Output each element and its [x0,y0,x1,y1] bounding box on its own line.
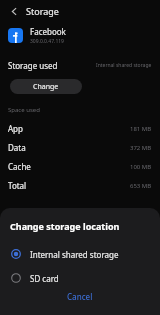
button[interactable]: Data [0,138,160,157]
staticText: 309.0.0.47.119 [30,38,64,45]
staticText: Internal shared storage [30,249,119,260]
button[interactable]: Change [10,79,82,94]
staticText: 653 MB [130,182,152,190]
button[interactable]: App [0,119,160,138]
staticText: SD card [30,273,59,284]
staticText: Cache [8,161,31,172]
button[interactable]: Cache [0,157,160,176]
staticText: Facebook [30,26,66,37]
staticText: App [8,123,23,134]
staticText: Storage used [8,60,58,71]
staticText: Cancel [67,291,93,302]
button[interactable]: Cancel [55,288,105,305]
staticText: Change storage location [10,220,120,232]
staticText: 372 MB [130,144,152,152]
staticText: 181 MB [130,125,152,133]
staticText: Total [8,180,27,191]
button[interactable]: SD card [0,268,160,288]
staticText: 100 MB [130,163,152,171]
button[interactable]: Internal shared storage [0,244,160,264]
staticText: Storage [26,5,59,17]
button[interactable]: Total [0,176,160,195]
staticText: Space used [8,106,40,114]
staticText: Internal shared storage [96,62,152,69]
button[interactable]: Back [6,3,22,19]
staticText: Data [8,142,26,153]
staticText: Change [33,82,59,92]
